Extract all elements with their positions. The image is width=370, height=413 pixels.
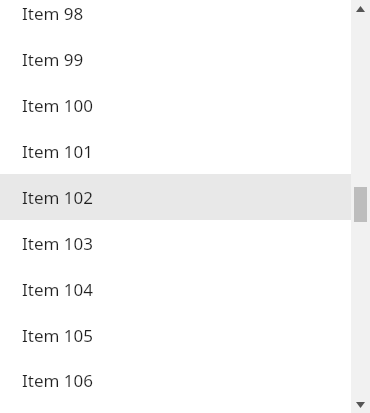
staticText: Item 102	[22, 186, 93, 209]
staticText: Item 103	[22, 232, 93, 255]
button[interactable]: Item 105	[0, 312, 351, 358]
staticText: Item 105	[22, 324, 93, 347]
button[interactable]: Item 102	[0, 174, 351, 220]
staticText: Item 106	[22, 369, 93, 392]
button[interactable]: Item 101	[0, 128, 351, 174]
button[interactable]: Item 100	[0, 82, 351, 128]
button[interactable]: Item 106	[0, 358, 351, 403]
button[interactable]: Item 98	[0, 0, 351, 36]
staticText: Item 99	[22, 48, 84, 71]
staticText: Item 101	[22, 140, 93, 163]
button[interactable]: Item 104	[0, 266, 351, 312]
button[interactable]: Scroll down	[351, 396, 370, 413]
staticText: Item 100	[22, 94, 93, 117]
staticText: Item 98	[22, 2, 84, 25]
button[interactable]: Item 103	[0, 220, 351, 266]
button[interactable]: Item 99	[0, 36, 351, 82]
button[interactable]: Scroll up	[351, 0, 370, 17]
staticText: Item 104	[22, 278, 93, 301]
